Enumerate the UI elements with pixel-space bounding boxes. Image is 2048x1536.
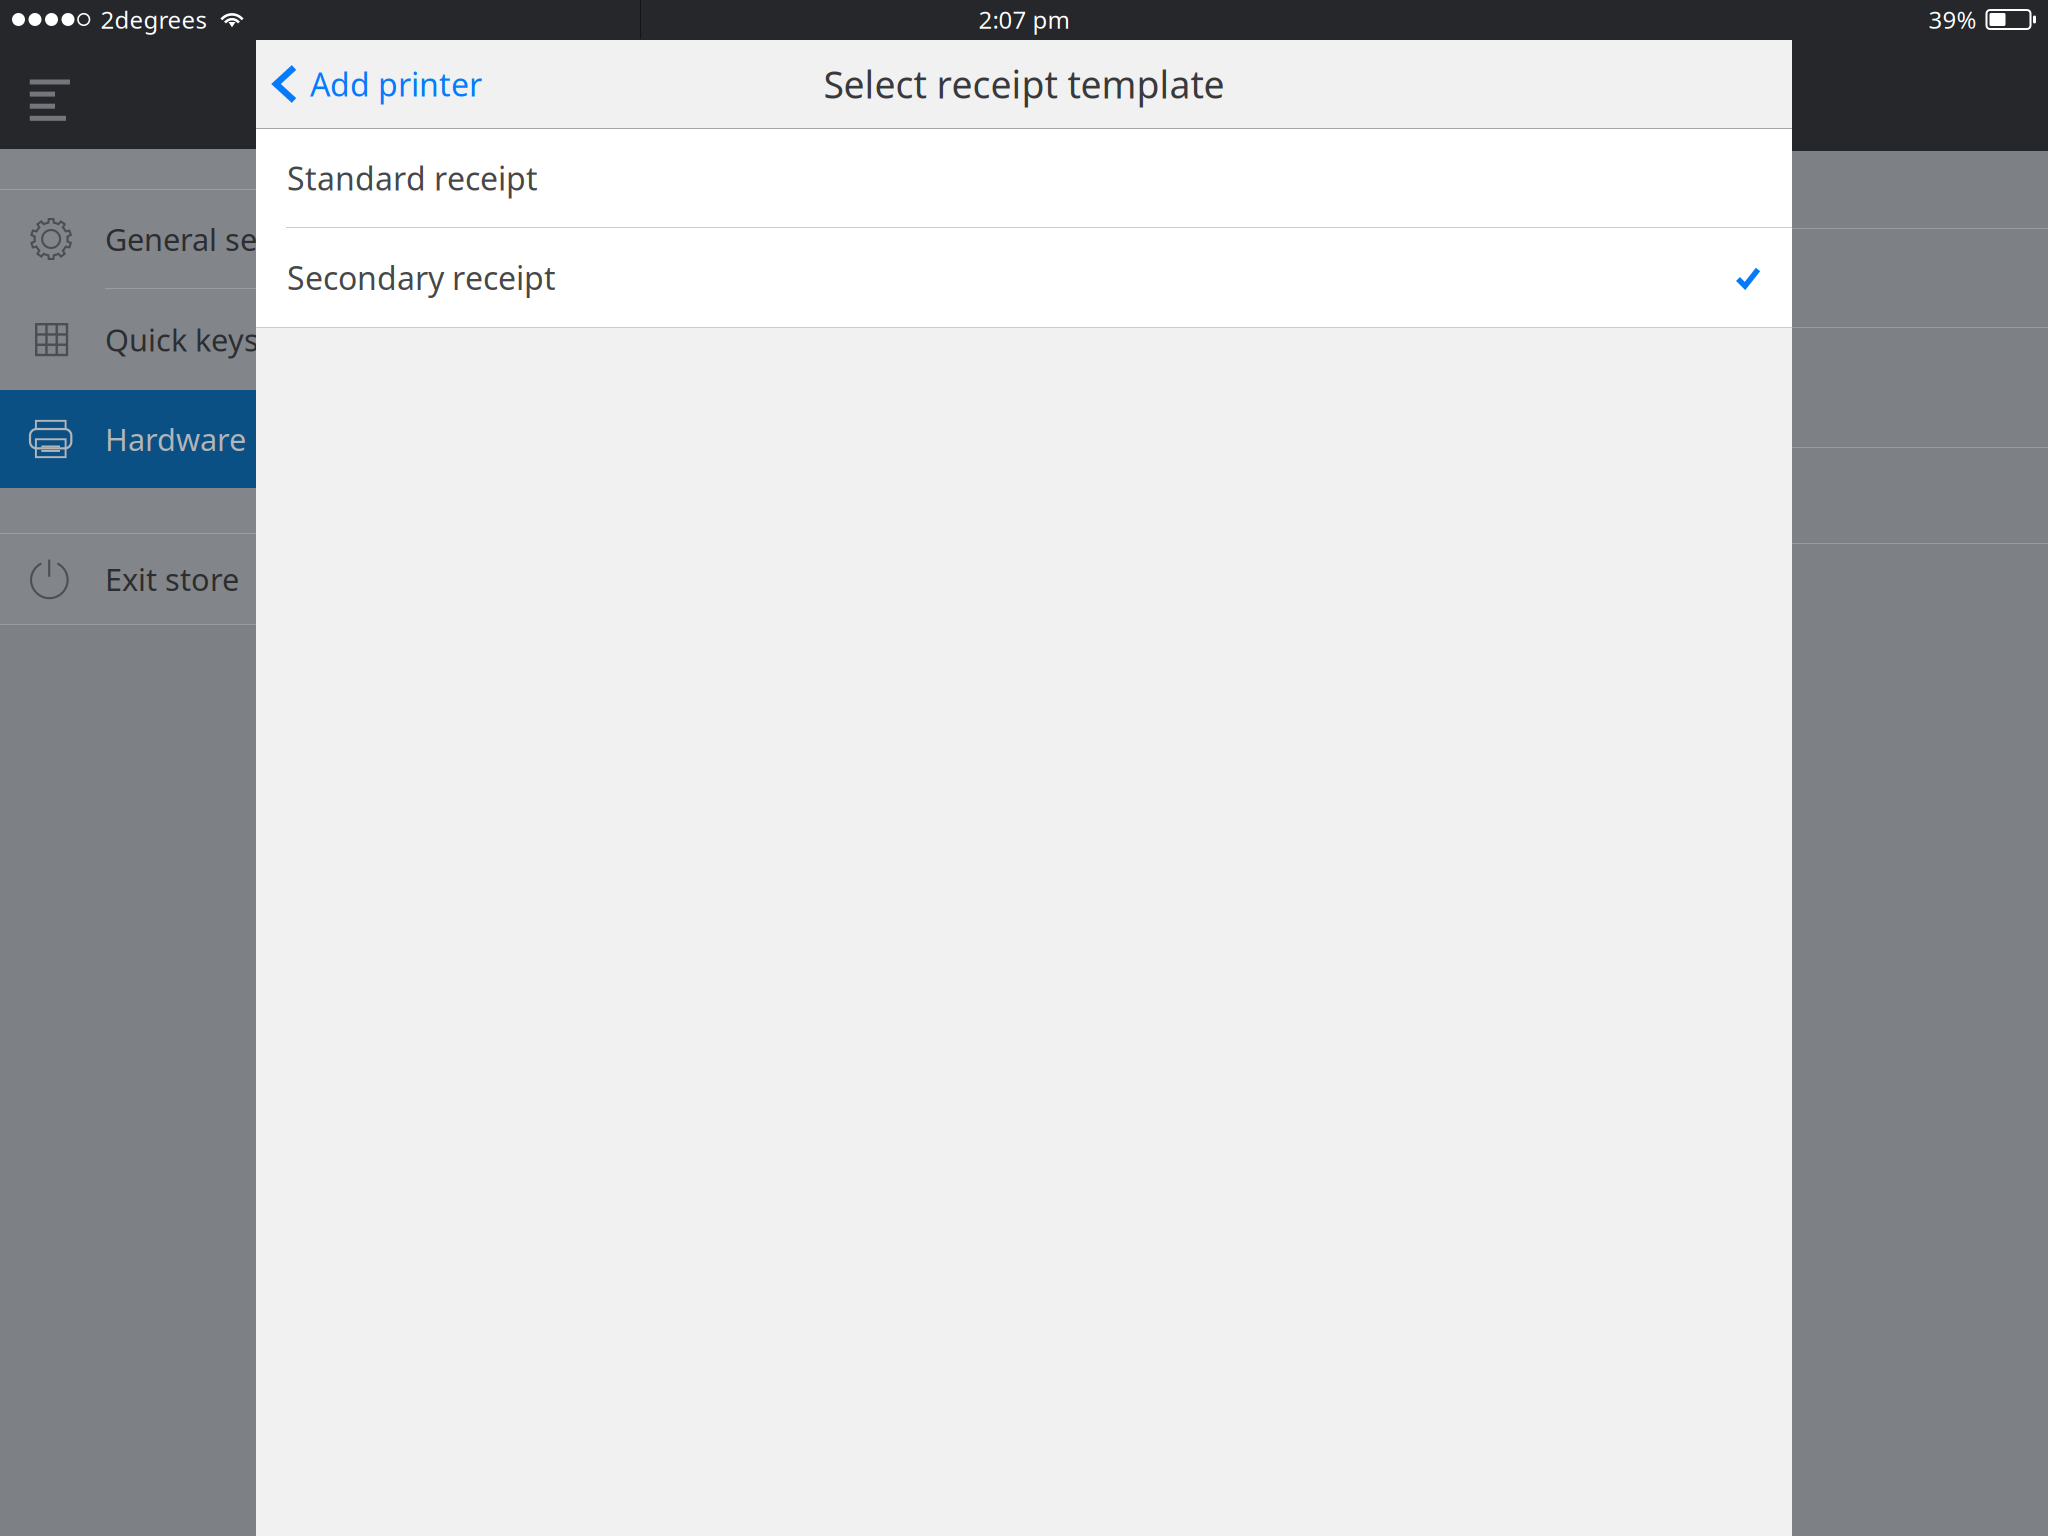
staticText: 39%	[1928, 4, 1976, 35]
button[interactable]: Standard receipt	[256, 129, 1792, 227]
staticText: Standard receipt	[287, 157, 538, 199]
staticText: Hardware	[105, 419, 246, 459]
button[interactable]: Menu	[0, 39, 96, 149]
staticText: General settings	[105, 219, 340, 259]
staticText: 2degrees	[100, 4, 206, 35]
button[interactable]: Exit store	[0, 534, 560, 624]
staticText: Select receipt template	[823, 59, 1224, 109]
button[interactable]: Secondary receipt	[256, 228, 1792, 327]
button[interactable]: Quick keys	[0, 289, 560, 390]
staticText: Secondary receipt	[287, 256, 556, 299]
button[interactable]: General settings	[0, 190, 560, 288]
staticText: Add printer	[310, 63, 482, 105]
staticText: Exit store	[105, 559, 239, 599]
button[interactable]: Add printer	[256, 40, 498, 128]
button[interactable]: Hardware	[0, 390, 560, 488]
staticText: Quick keys	[105, 319, 259, 360]
staticText: 2:07 pm	[978, 4, 1069, 35]
